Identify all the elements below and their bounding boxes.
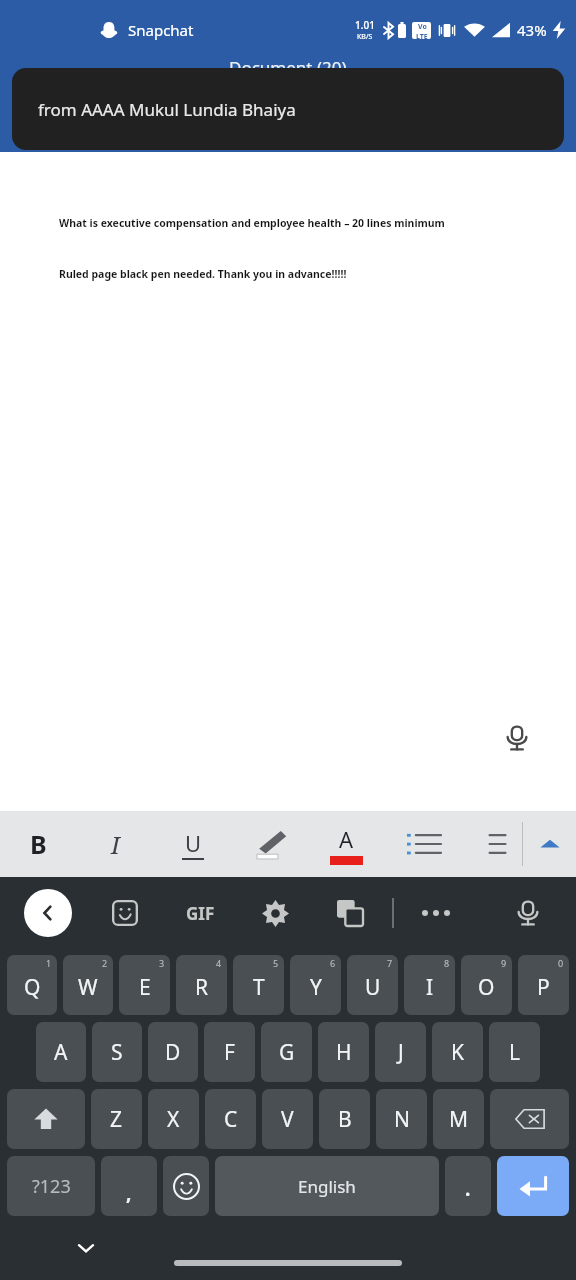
staticText: 1 xyxy=(46,957,52,969)
staticText: V xyxy=(281,1105,294,1134)
button[interactable]: Emoji xyxy=(163,1156,209,1216)
button[interactable]: G xyxy=(261,1022,312,1082)
staticText: 8 xyxy=(444,957,450,969)
staticText: W xyxy=(78,973,98,1002)
staticText: Y xyxy=(310,973,322,1002)
staticText: Q xyxy=(24,973,41,1002)
staticText: D xyxy=(165,1038,181,1067)
staticText: K xyxy=(451,1038,464,1067)
button[interactable]: 7 xyxy=(347,955,398,1015)
staticText: 3 xyxy=(159,957,165,969)
button[interactable]: Hide keyboard xyxy=(68,1230,104,1266)
staticText: L xyxy=(509,1038,521,1067)
button[interactable]: Stickers xyxy=(103,891,147,935)
staticText: . xyxy=(465,1176,471,1202)
button[interactable]: More options xyxy=(414,891,458,935)
button[interactable]: Italic xyxy=(77,811,154,877)
button[interactable]: 2 xyxy=(63,955,113,1015)
staticText: G xyxy=(279,1038,295,1067)
button[interactable]: J xyxy=(375,1022,426,1082)
staticText: 4 xyxy=(216,957,222,969)
staticText: P xyxy=(537,973,550,1002)
button[interactable]: ?123 xyxy=(7,1156,95,1216)
staticText: 5 xyxy=(273,957,279,969)
button[interactable]: English xyxy=(215,1156,439,1216)
staticText: U xyxy=(185,828,202,858)
staticText: N xyxy=(394,1105,410,1134)
staticText: 7 xyxy=(387,957,393,969)
staticText: C xyxy=(224,1105,238,1134)
button[interactable]: D xyxy=(148,1022,198,1082)
staticText: 6 xyxy=(330,957,336,969)
button[interactable]: N xyxy=(376,1089,427,1149)
button[interactable]: Numbered list xyxy=(462,811,522,877)
staticText: A xyxy=(54,1038,68,1067)
button[interactable]: 3 xyxy=(119,955,170,1015)
staticText: E xyxy=(139,973,151,1002)
button[interactable]: H xyxy=(318,1022,369,1082)
button[interactable]: Enter xyxy=(497,1156,569,1216)
button[interactable]: Backspace xyxy=(490,1089,569,1149)
button[interactable]: S xyxy=(92,1022,142,1082)
button[interactable]: Underline xyxy=(154,811,231,877)
button[interactable]: 1 xyxy=(7,955,57,1015)
staticText: O xyxy=(478,973,495,1002)
staticText: J xyxy=(398,1038,404,1067)
button[interactable]: M xyxy=(433,1089,484,1149)
button[interactable]: 5 xyxy=(233,955,284,1015)
button[interactable]: Bulleted list xyxy=(385,811,462,877)
button[interactable]: L xyxy=(489,1022,540,1082)
staticText: Document (20) xyxy=(229,56,347,79)
staticText: F xyxy=(224,1038,235,1067)
button[interactable]: More xyxy=(523,811,576,877)
staticText: U xyxy=(365,973,381,1002)
button[interactable]: Back xyxy=(24,889,72,937)
button[interactable]: 8 xyxy=(404,955,455,1015)
button[interactable]: Bold xyxy=(0,811,77,877)
button[interactable]: V xyxy=(262,1089,313,1149)
staticText: KB/S xyxy=(357,32,373,42)
staticText: S xyxy=(111,1038,123,1067)
staticText: GIF xyxy=(186,902,215,925)
button[interactable]: A xyxy=(36,1022,86,1082)
button[interactable]: Voice typing xyxy=(484,705,550,771)
button[interactable]: Z xyxy=(91,1089,142,1149)
staticText: R xyxy=(195,973,209,1002)
staticText: Snapchat xyxy=(128,20,194,40)
button[interactable]: Settings xyxy=(253,891,297,935)
button[interactable]: Translate xyxy=(328,891,372,935)
button[interactable]: 9 xyxy=(461,955,512,1015)
button[interactable]: Voice input xyxy=(506,891,550,935)
button[interactable]: 0 xyxy=(518,955,569,1015)
staticText: H xyxy=(336,1038,352,1067)
staticText: 9 xyxy=(501,957,507,969)
staticText: B xyxy=(338,1105,352,1134)
button[interactable]: B xyxy=(319,1089,370,1149)
button[interactable]: , xyxy=(101,1156,157,1216)
staticText: , xyxy=(126,1180,132,1206)
button[interactable]: GIF xyxy=(178,891,222,935)
staticText: 43% xyxy=(517,20,547,40)
staticText: LTE xyxy=(416,32,428,39)
button[interactable]: Shift xyxy=(7,1089,85,1149)
staticText: Vo xyxy=(418,22,427,32)
staticText: 2 xyxy=(102,957,108,969)
button[interactable]: C xyxy=(205,1089,256,1149)
staticText: X xyxy=(167,1105,180,1134)
staticText: 0 xyxy=(558,957,564,969)
staticText: from AAAA Mukul Lundia Bhaiya xyxy=(38,98,296,121)
staticText: ?123 xyxy=(32,1174,71,1199)
staticText: What is executive compensation and emplo… xyxy=(59,216,445,230)
button[interactable]: 4 xyxy=(176,955,227,1015)
button[interactable]: . xyxy=(445,1156,491,1216)
button[interactable]: F xyxy=(204,1022,255,1082)
button[interactable]: X xyxy=(148,1089,199,1149)
button[interactable]: Text color xyxy=(308,811,385,877)
staticText: English xyxy=(298,1175,356,1198)
staticText: Z xyxy=(110,1105,123,1134)
staticText: T xyxy=(253,973,265,1002)
button[interactable]: 6 xyxy=(290,955,341,1015)
button[interactable]: Highlight xyxy=(231,811,308,877)
button[interactable]: K xyxy=(432,1022,483,1082)
button[interactable]: from AAAA Mukul Lundia Bhaiya xyxy=(12,68,564,150)
